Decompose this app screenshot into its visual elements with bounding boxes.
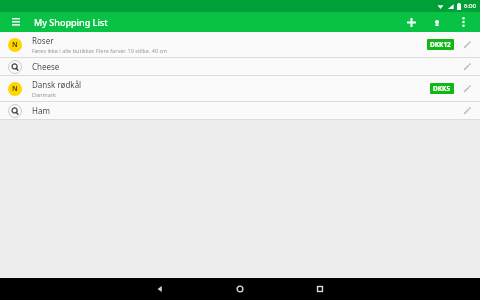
button[interactable]: Home [200,278,280,300]
button[interactable]: Back [120,278,200,300]
button[interactable]: Edit Dansk rødkål [460,82,474,96]
staticText: Føres ikke i alle butikker. Flere farver… [32,47,168,54]
button[interactable]: Recent apps [280,278,360,300]
staticText: DKK12 [430,40,451,49]
button[interactable]: DKK5 [430,83,454,94]
button[interactable]: Open navigation drawer [8,14,24,30]
staticText: 6:00 [464,2,476,10]
staticText: DKK5 [433,84,451,93]
button[interactable]: DKK12 [427,39,454,50]
staticText: Roser [32,35,54,46]
button[interactable]: N [0,76,480,101]
button[interactable]: Edit Cheese [460,60,474,74]
staticText: Dansk rødkål [32,79,82,90]
button[interactable]: Share list [428,13,446,31]
button[interactable]: Edit Ham [460,104,474,118]
staticText: Cheese [32,61,60,72]
staticText: N [12,40,18,50]
staticText: N [12,84,18,94]
button[interactable]: Ham [0,102,480,119]
button[interactable]: N [0,32,480,57]
button[interactable]: Edit Roser [460,38,474,52]
staticText: My Shopping List [34,16,108,28]
staticText: Danmark [32,91,56,98]
button[interactable]: More options [454,13,472,31]
staticText: Ham [32,105,50,116]
button[interactable]: Add item [402,13,420,31]
button[interactable]: Cheese [0,58,480,75]
